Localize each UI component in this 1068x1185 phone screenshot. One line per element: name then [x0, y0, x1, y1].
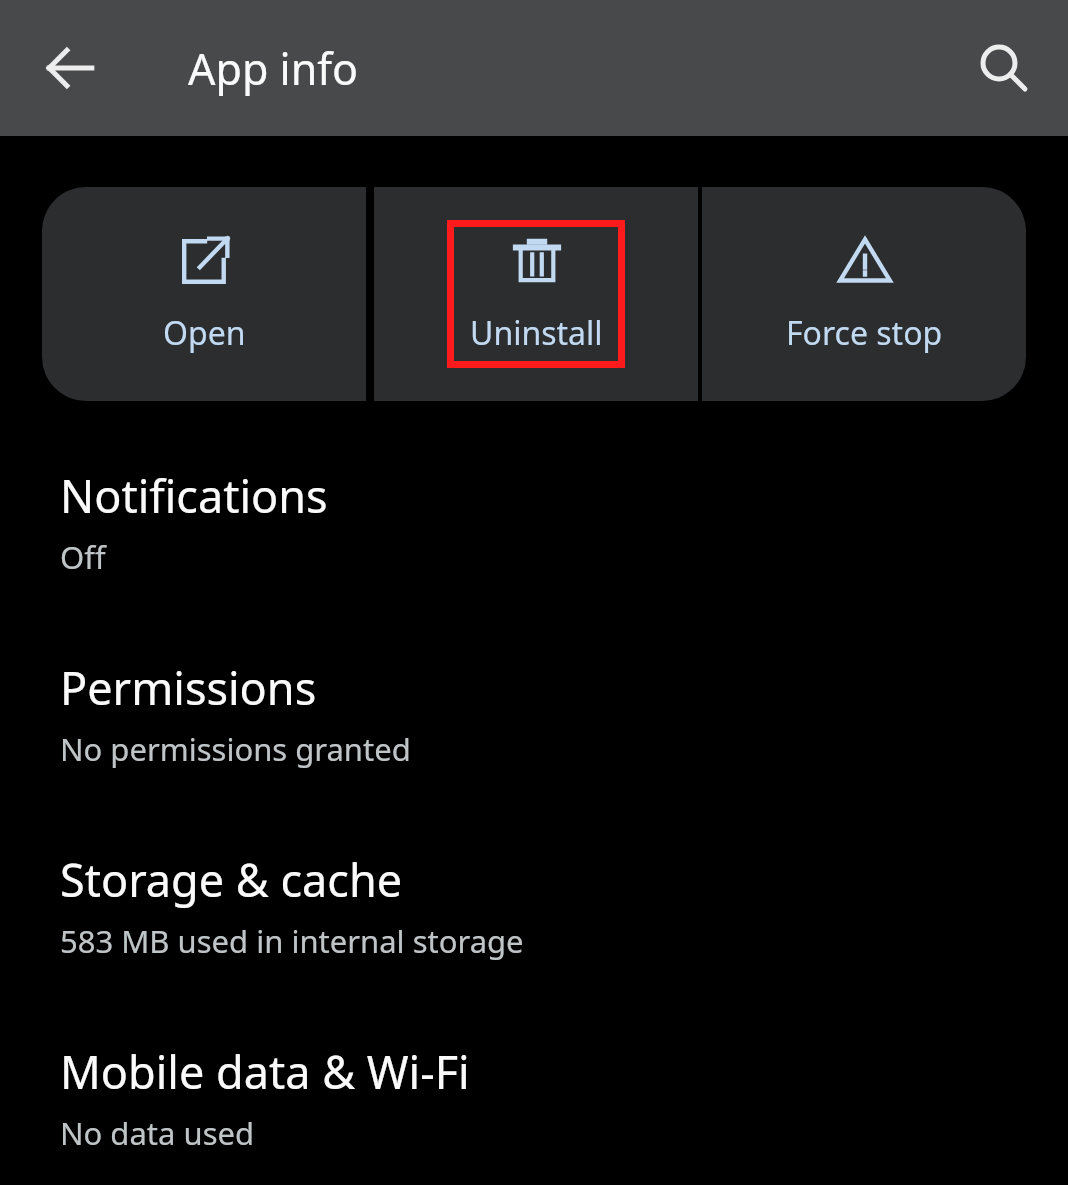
staticText: Permissions	[60, 657, 317, 718]
button[interactable]: Storage & cache	[0, 831, 1068, 1023]
button[interactable]: Search	[958, 22, 1050, 114]
staticText: No data used	[60, 1112, 255, 1154]
staticText: 583 MB used in internal storage	[60, 920, 524, 962]
button[interactable]: Uninstall	[374, 187, 698, 401]
staticText: Notifications	[60, 465, 328, 526]
staticText: App info	[188, 39, 359, 98]
staticText: Mobile data & Wi-Fi	[60, 1041, 470, 1102]
button[interactable]: Notifications	[0, 447, 1068, 639]
button[interactable]: Permissions	[0, 639, 1068, 831]
button[interactable]: Mobile data & Wi-Fi	[0, 1023, 1068, 1185]
staticText: Force stop	[786, 311, 943, 355]
staticText: Storage & cache	[60, 849, 403, 910]
staticText: Open	[163, 311, 246, 355]
staticText: Uninstall	[470, 311, 603, 355]
button[interactable]: Back	[24, 22, 116, 114]
staticText: No permissions granted	[60, 728, 411, 770]
staticText: Off	[60, 536, 106, 578]
button[interactable]: Open	[42, 187, 366, 401]
button[interactable]: Force stop	[702, 187, 1026, 401]
